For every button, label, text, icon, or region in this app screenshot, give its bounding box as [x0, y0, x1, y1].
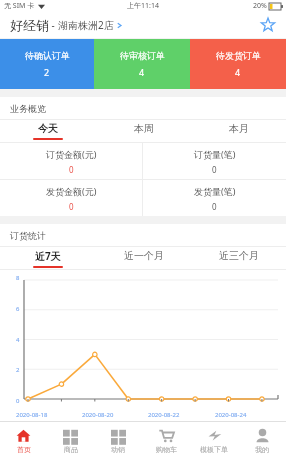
staticText: 6: [16, 305, 20, 313]
button[interactable]: 好经销: [10, 17, 123, 33]
staticText: -: [49, 18, 58, 32]
staticText: 4: [16, 336, 20, 344]
staticText: 0: [16, 397, 20, 405]
staticText: 近一个月: [124, 249, 164, 262]
staticText: 我的: [255, 445, 269, 454]
staticText: 0: [69, 164, 74, 175]
button[interactable]: 订货量(笔): [143, 143, 286, 179]
staticText: 好经销: [10, 17, 49, 33]
staticText: 订货金额(元): [46, 148, 97, 160]
button[interactable]: 订货金额(元): [0, 143, 142, 179]
button[interactable]: 待确认订单: [0, 39, 94, 89]
staticText: 近7天: [35, 249, 61, 263]
staticText: 2020-08-24: [215, 411, 247, 419]
staticText: 发货金额(元): [46, 185, 97, 197]
button[interactable]: 商品: [47, 422, 94, 460]
staticText: 订货量(笔): [194, 148, 236, 160]
button[interactable]: 动销: [94, 422, 142, 460]
staticText: 4: [139, 66, 145, 78]
staticText: 2: [16, 366, 20, 374]
button[interactable]: 模板下单: [190, 422, 238, 460]
button[interactable]: 收藏: [258, 15, 278, 35]
button[interactable]: 近一个月: [96, 247, 191, 269]
staticText: 无 SIM 卡: [4, 1, 35, 11]
button[interactable]: 本周: [96, 120, 191, 142]
staticText: 商品: [64, 445, 78, 454]
staticText: 近三个月: [219, 249, 259, 262]
staticText: 2020-08-18: [16, 411, 48, 419]
staticText: 待确认订单: [25, 50, 70, 61]
staticText: 0: [69, 201, 74, 212]
staticText: 2020-08-22: [148, 411, 180, 419]
staticText: 2020-08-20: [82, 411, 114, 419]
button[interactable]: 近三个月: [191, 247, 286, 269]
staticText: 订货统计: [10, 230, 46, 241]
staticText: 4: [235, 66, 241, 78]
button[interactable]: 本月: [191, 120, 286, 142]
button[interactable]: 今天: [0, 120, 96, 142]
staticText: 购物车: [156, 445, 177, 454]
staticText: 模板下单: [200, 445, 228, 454]
button[interactable]: 我的: [238, 422, 286, 460]
staticText: 20%: [253, 1, 267, 11]
button[interactable]: 首页: [0, 422, 47, 460]
button[interactable]: 发货量(笔): [143, 180, 286, 216]
staticText: 8: [16, 274, 20, 282]
staticText: 今天: [38, 122, 58, 135]
staticText: 0: [212, 164, 217, 175]
staticText: 0: [212, 201, 217, 212]
staticText: 本月: [229, 122, 249, 135]
button[interactable]: 购物车: [142, 422, 190, 460]
staticText: 业务概览: [10, 103, 46, 114]
staticText: 发货量(笔): [194, 185, 236, 197]
staticText: 首页: [17, 445, 31, 454]
staticText: 本周: [134, 122, 154, 135]
button[interactable]: 近7天: [0, 247, 96, 269]
staticText: 待审核订单: [120, 50, 165, 61]
staticText: 湖南株洲2店: [58, 18, 114, 32]
staticText: 动销: [111, 445, 125, 454]
staticText: 2: [44, 66, 50, 78]
staticText: 上午11:14: [127, 1, 159, 11]
staticText: 待发货订单: [216, 50, 261, 61]
button[interactable]: 待审核订单: [94, 39, 190, 89]
button[interactable]: 发货金额(元): [0, 180, 142, 216]
button[interactable]: 待发货订单: [190, 39, 286, 89]
